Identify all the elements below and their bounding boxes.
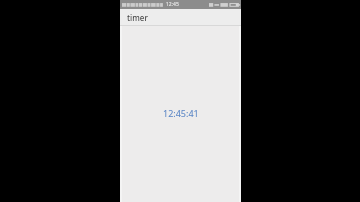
button[interactable]: timer <box>120 9 241 25</box>
staticText: 12:45:41 <box>163 107 199 119</box>
staticText: timer <box>127 12 148 23</box>
staticText: 12:45 <box>166 1 179 8</box>
button[interactable]: 12:45:41 <box>120 107 241 119</box>
